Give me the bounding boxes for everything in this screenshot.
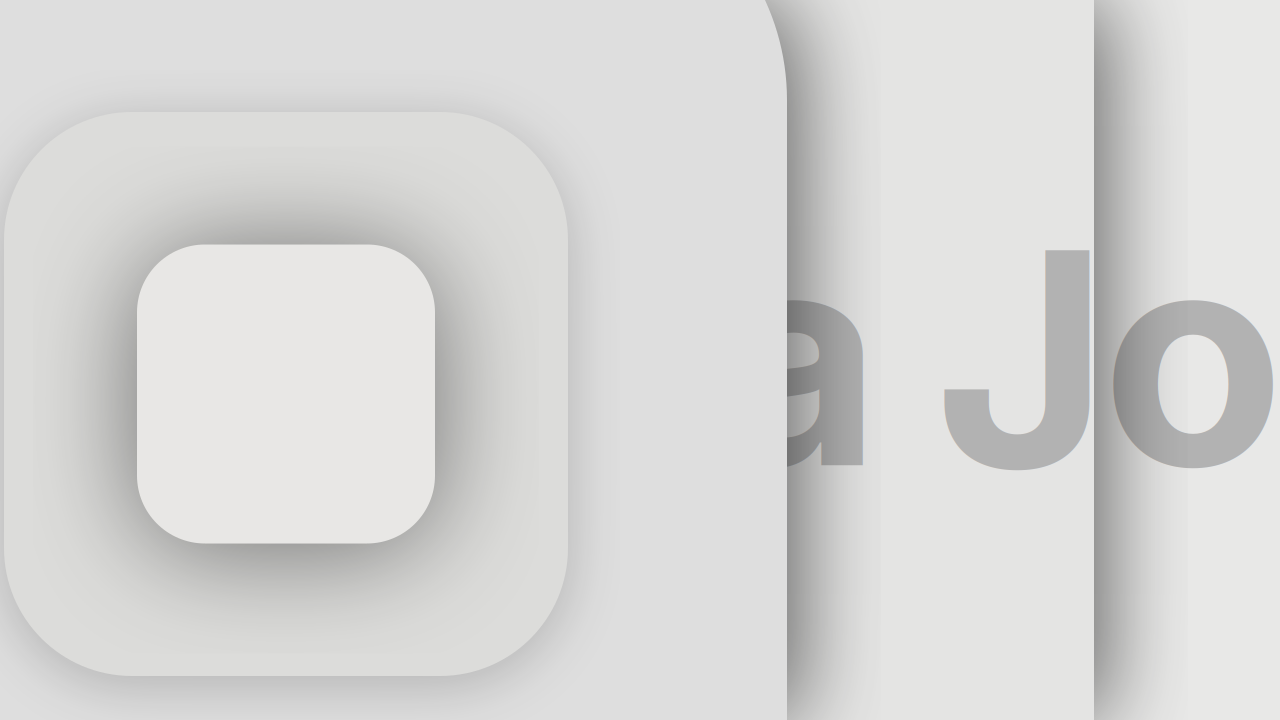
staticText: a: [708, 176, 881, 537]
staticText: J: [934, 178, 1109, 539]
staticText: o: [1101, 176, 1280, 537]
